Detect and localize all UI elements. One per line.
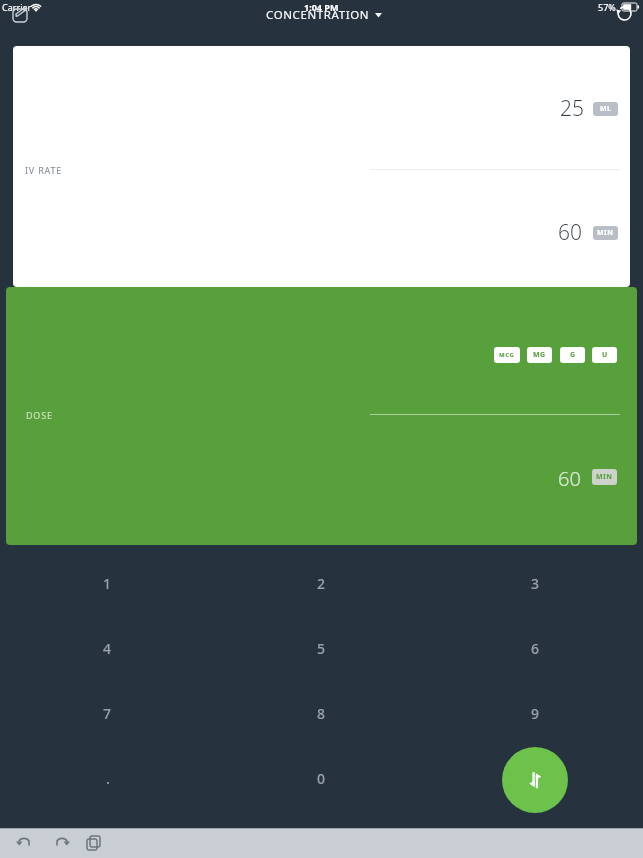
staticText: 1 xyxy=(103,574,112,593)
button[interactable]: 2 xyxy=(214,551,429,616)
button[interactable]: 8 xyxy=(214,681,429,746)
button[interactable]: 6 xyxy=(428,616,643,681)
staticText: 25 xyxy=(560,94,584,123)
button[interactable] xyxy=(612,2,638,26)
staticText: 57% xyxy=(598,1,616,13)
button[interactable]: MG xyxy=(527,347,552,363)
staticText: DOSE xyxy=(26,409,53,421)
button[interactable]: U xyxy=(592,347,617,363)
staticText: IV RATE xyxy=(25,164,63,176)
staticText: 2 xyxy=(317,574,326,593)
staticText: CONCENTRATION xyxy=(266,7,370,22)
button[interactable]: 5 xyxy=(214,616,429,681)
staticText: 60 xyxy=(558,465,581,492)
button[interactable]: 4 xyxy=(0,616,215,681)
staticText: 60 xyxy=(558,218,582,247)
staticText: Carrier xyxy=(2,1,32,13)
staticText: 0 xyxy=(317,769,326,788)
button[interactable] xyxy=(8,4,34,26)
button[interactable]: ML xyxy=(593,102,618,116)
staticText: MIN xyxy=(596,472,613,482)
staticText: 3 xyxy=(531,574,540,593)
button[interactable]: MCG xyxy=(494,347,520,363)
button[interactable]: 0 xyxy=(214,746,429,811)
button[interactable]: 3 xyxy=(428,551,643,616)
staticText: MG xyxy=(533,350,546,360)
button[interactable]: 9 xyxy=(428,681,643,746)
staticText: 4 xyxy=(103,639,112,658)
button[interactable] xyxy=(82,832,106,854)
button[interactable] xyxy=(48,832,72,854)
staticText: MCG xyxy=(499,351,515,359)
staticText: 9 xyxy=(531,704,540,723)
button[interactable] xyxy=(14,832,38,854)
staticText: 6 xyxy=(531,639,540,658)
staticText: 7 xyxy=(103,704,112,723)
staticText: 5 xyxy=(317,639,326,658)
button[interactable]: G xyxy=(560,347,585,363)
button[interactable]: MIN xyxy=(592,469,617,485)
button[interactable]: 7 xyxy=(0,681,215,746)
button[interactable]: CONCENTRATION xyxy=(0,7,643,22)
button[interactable]: 1 xyxy=(0,551,215,616)
button[interactable] xyxy=(502,747,568,813)
staticText: . xyxy=(106,769,110,788)
staticText: 1:04 PM xyxy=(304,1,339,13)
button[interactable]: MIN xyxy=(593,226,618,240)
staticText: G xyxy=(570,350,576,360)
staticText: ML xyxy=(600,104,612,114)
staticText: MIN xyxy=(597,228,614,238)
staticText: U xyxy=(602,350,608,360)
staticText: 8 xyxy=(317,704,326,723)
